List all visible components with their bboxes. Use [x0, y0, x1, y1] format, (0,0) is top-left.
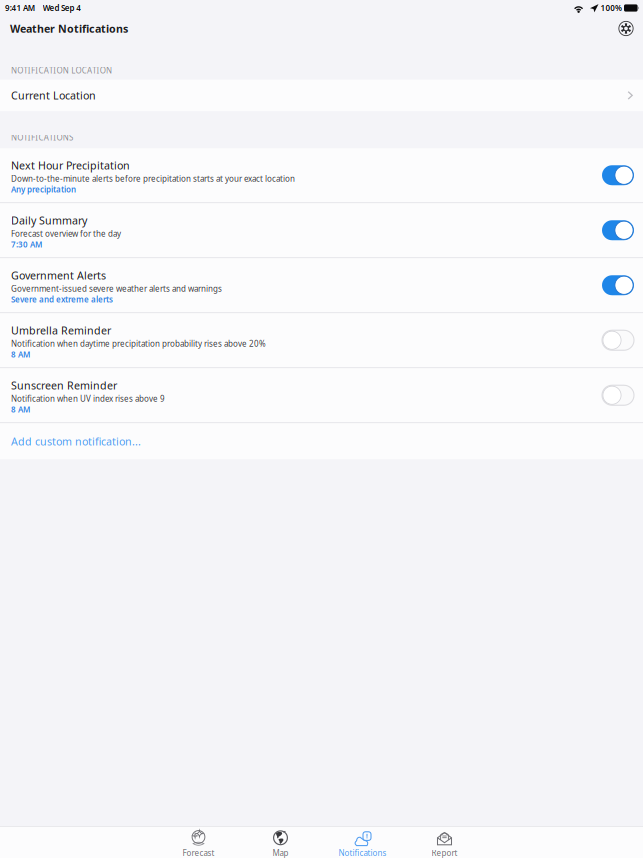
button[interactable]: Next Hour Precipitation — [0, 148, 643, 202]
staticText: Government-issued severe weather alerts … — [11, 283, 222, 294]
staticText: Notifications — [338, 847, 386, 858]
staticText: Umbrella Reminder — [11, 323, 111, 337]
staticText: Sunscreen Reminder — [11, 378, 117, 392]
staticText: Add custom notification... — [11, 434, 141, 448]
button[interactable]: Add custom notification... — [0, 423, 643, 459]
staticText: Down-to-the-minute alerts before precipi… — [11, 173, 295, 184]
staticText: Severe and extreme alerts — [11, 294, 113, 305]
button[interactable]: Sunscreen Reminder — [0, 368, 643, 422]
staticText: Weather Notifications — [10, 21, 128, 36]
staticText: 8 AM — [11, 404, 30, 415]
staticText: 9:41 AM — [5, 3, 35, 13]
button[interactable]: Umbrella Reminder — [0, 313, 643, 367]
staticText: Notification when UV index rises above 9 — [11, 393, 165, 404]
staticText: Notification when daytime precipitation … — [11, 338, 266, 349]
staticText: Daily Summary — [11, 213, 87, 227]
staticText: Next Hour Precipitation — [11, 158, 130, 172]
button[interactable]: Daily Summary — [0, 203, 643, 257]
staticText: Current Location — [11, 88, 96, 102]
button[interactable]: Map — [239, 826, 321, 858]
staticText: Government Alerts — [11, 268, 106, 282]
button[interactable]: Report — [403, 826, 485, 858]
button[interactable]: Notifications — [321, 826, 403, 858]
staticText: Wed Sep 4 — [43, 3, 81, 13]
staticText: 100% — [601, 3, 622, 13]
staticText: NOTIFICATIONS — [11, 132, 73, 143]
staticText: Report — [431, 847, 457, 858]
staticText: 8 AM — [11, 349, 30, 360]
button[interactable]: Settings — [611, 16, 641, 41]
staticText: Forecast — [182, 847, 214, 858]
button[interactable]: Government Alerts — [0, 258, 643, 312]
staticText: Forecast overview for the day — [11, 228, 121, 239]
staticText: Any precipitation — [11, 184, 76, 195]
staticText: 7:30 AM — [11, 239, 42, 250]
button[interactable]: Current Location — [0, 80, 643, 111]
button[interactable]: Forecast — [157, 826, 239, 858]
staticText: Map — [272, 847, 288, 858]
staticText: NOTIFICATION LOCATION — [11, 65, 112, 76]
